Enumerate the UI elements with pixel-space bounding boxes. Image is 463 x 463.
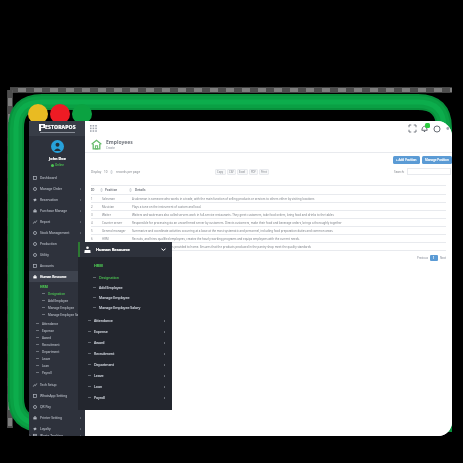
- staticText: Leave: [42, 357, 51, 361]
- button[interactable]: 4: [91, 219, 446, 226]
- button[interactable]: Utility: [29, 249, 85, 260]
- button[interactable]: Add Employee: [29, 297, 85, 304]
- staticText: Purchase Manage: [40, 209, 68, 213]
- button[interactable]: Payroll: [78, 392, 172, 403]
- staticText: 2: [91, 205, 102, 209]
- button[interactable]: Human Resource: [78, 242, 172, 257]
- staticText: John Doe: [49, 156, 66, 161]
- button[interactable]: Leave: [29, 355, 85, 362]
- button[interactable]: ESTORAPOS: [29, 121, 85, 136]
- staticText: Waste Tracking: [40, 434, 63, 436]
- button[interactable]: Production: [29, 238, 85, 249]
- button[interactable]: Loan: [29, 362, 85, 369]
- button[interactable]: Waste Tracking: [29, 434, 85, 436]
- staticText: Printer Setting: [40, 416, 63, 420]
- button[interactable]: Recruitment: [78, 348, 172, 359]
- staticText: Designation: [48, 292, 66, 296]
- staticText: Details: [135, 188, 146, 192]
- staticText: Human Resource: [40, 275, 67, 279]
- button[interactable]: Manage Order: [29, 183, 85, 194]
- staticText: ›: [80, 427, 82, 431]
- button[interactable]: QR Pay: [29, 401, 85, 412]
- button[interactable]: Manage Position: [422, 156, 452, 164]
- button[interactable]: Award: [29, 334, 85, 341]
- button[interactable]: 1: [91, 195, 446, 202]
- button[interactable]: Human Resource: [29, 271, 85, 282]
- button[interactable]: 3: [91, 211, 446, 218]
- staticText: Next: [440, 256, 446, 260]
- button[interactable]: Dashboard: [29, 172, 85, 183]
- button[interactable]: Recruitment: [29, 341, 85, 348]
- button[interactable]: Department: [29, 348, 85, 355]
- button[interactable]: Designation: [78, 272, 172, 282]
- staticText: Payroll: [42, 371, 52, 375]
- staticText: Recruits, and hires qualified employees,…: [132, 237, 300, 241]
- button[interactable]: 1: [430, 255, 438, 261]
- button[interactable]: Loan: [78, 381, 172, 392]
- staticText: Recruitment: [94, 351, 115, 356]
- button[interactable]: PDF: [249, 169, 258, 175]
- button[interactable]: Copy: [215, 169, 226, 175]
- staticText: Manage Employee Salary: [48, 313, 84, 317]
- button[interactable]: Designation: [29, 290, 85, 297]
- button[interactable]: Report: [29, 216, 85, 227]
- button[interactable]: Manage Employee Salary: [29, 311, 85, 318]
- staticText: ›: [80, 209, 82, 213]
- button[interactable]: 2: [91, 203, 446, 210]
- staticText: Manage Employee Salary: [99, 305, 141, 310]
- button[interactable]: HRM: [78, 260, 172, 270]
- staticText: Human Resource: [96, 247, 131, 252]
- button[interactable]: Award: [78, 337, 172, 348]
- staticText: Print: [261, 170, 267, 174]
- button[interactable]: Excel: [237, 169, 248, 175]
- staticText: Loyalty: [40, 427, 51, 431]
- button[interactable]: Manage Employee: [78, 292, 172, 302]
- staticText: ›: [80, 198, 82, 202]
- staticText: Tech Setup: [40, 383, 57, 387]
- staticText: ESTORAPOS: [45, 124, 76, 131]
- button[interactable]: Print: [259, 169, 269, 175]
- staticText: ‹: [164, 396, 165, 400]
- staticText: Position: [105, 188, 129, 192]
- staticText: Employees: [106, 139, 133, 146]
- button[interactable]: Purchase Manage: [29, 205, 85, 216]
- button[interactable]: Payroll: [29, 369, 85, 376]
- button[interactable]: Profile: [445, 125, 452, 132]
- staticText: ‹: [164, 319, 165, 323]
- staticText: Utility: [40, 253, 49, 257]
- button[interactable]: Leave: [78, 370, 172, 381]
- button[interactable]: WhatsApp Setting: [29, 390, 85, 401]
- button[interactable]: 6: [91, 235, 446, 242]
- button[interactable]: Stock Management: [29, 227, 85, 238]
- button[interactable]: Expense: [78, 326, 172, 337]
- button[interactable]: Attendance: [78, 315, 172, 326]
- button[interactable]: Notifications: [420, 124, 429, 133]
- button[interactable]: Attendance: [29, 320, 85, 327]
- button[interactable]: Reservation: [29, 194, 85, 205]
- button[interactable]: Printer Setting: [29, 412, 85, 423]
- button[interactable]: CSV: [227, 169, 236, 175]
- button[interactable]: Accounts: [29, 260, 85, 271]
- staticText: Counter server: [102, 221, 132, 225]
- button[interactable]: Loyalty: [29, 423, 85, 434]
- button[interactable]: Department: [78, 359, 172, 370]
- button[interactable]: 7: [91, 243, 446, 250]
- button[interactable]: Theme: [433, 125, 441, 133]
- button[interactable]: Manage Employee Salary: [78, 302, 172, 312]
- button[interactable]: Add Employee: [78, 282, 172, 292]
- staticText: ‹: [164, 330, 165, 334]
- button[interactable]: Fullscreen: [409, 125, 416, 132]
- button[interactable]: Expense: [29, 327, 85, 334]
- button[interactable]: 5: [91, 227, 446, 234]
- button[interactable]: + Add Position: [393, 156, 420, 164]
- button[interactable]: [407, 168, 451, 175]
- button[interactable]: Tech Setup: [29, 379, 85, 390]
- staticText: Manage Order: [40, 187, 63, 191]
- staticText: Recruitment: [42, 343, 60, 347]
- button[interactable]: Manage Employee: [29, 304, 85, 311]
- button[interactable]: Menu: [90, 125, 97, 132]
- staticText: General manager: [102, 229, 132, 233]
- staticText: ‹: [164, 352, 165, 356]
- button[interactable]: HRM: [29, 282, 85, 290]
